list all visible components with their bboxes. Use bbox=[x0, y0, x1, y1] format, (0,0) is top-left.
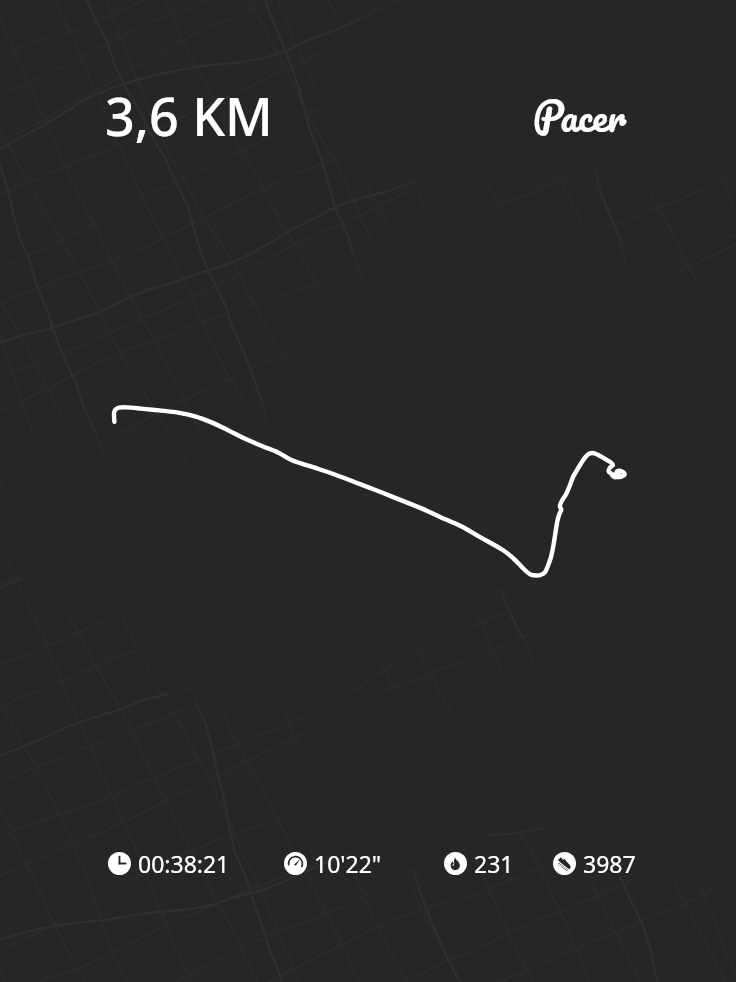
staticText: 10'22" bbox=[314, 848, 382, 879]
button[interactable]: Duration bbox=[108, 848, 230, 879]
staticText: 3,6 KM bbox=[105, 80, 273, 151]
staticText: Pacer bbox=[533, 82, 626, 149]
button[interactable]: Calories bbox=[444, 848, 514, 879]
button[interactable]: Steps bbox=[553, 848, 636, 879]
staticText: 3987 bbox=[583, 848, 636, 879]
staticText: 00:38:21 bbox=[138, 848, 230, 879]
button[interactable]: Pace bbox=[284, 848, 382, 879]
staticText: 231 bbox=[474, 848, 514, 879]
